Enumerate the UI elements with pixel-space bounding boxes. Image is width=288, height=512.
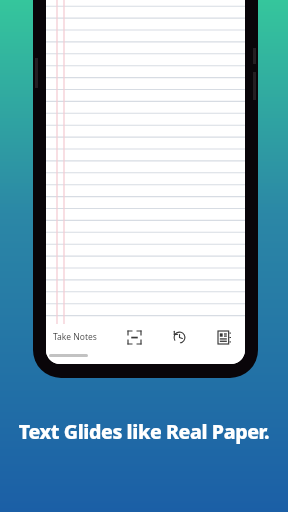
staticText: Take Notes <box>53 331 97 343</box>
staticText: Text Glides like Real Paper. <box>0 418 288 445</box>
button[interactable]: History <box>168 326 190 348</box>
button[interactable]: Take Notes <box>46 327 104 347</box>
button[interactable]: Scan text with OCR <box>123 326 145 348</box>
button[interactable]: Templates <box>213 326 235 348</box>
